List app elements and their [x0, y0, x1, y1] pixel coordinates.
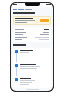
other: Timeline step	[15, 78, 18, 81]
button[interactable]: Pay now	[40, 19, 49, 22]
other: Timeline step	[15, 50, 18, 53]
other: Timeline step	[15, 64, 18, 67]
